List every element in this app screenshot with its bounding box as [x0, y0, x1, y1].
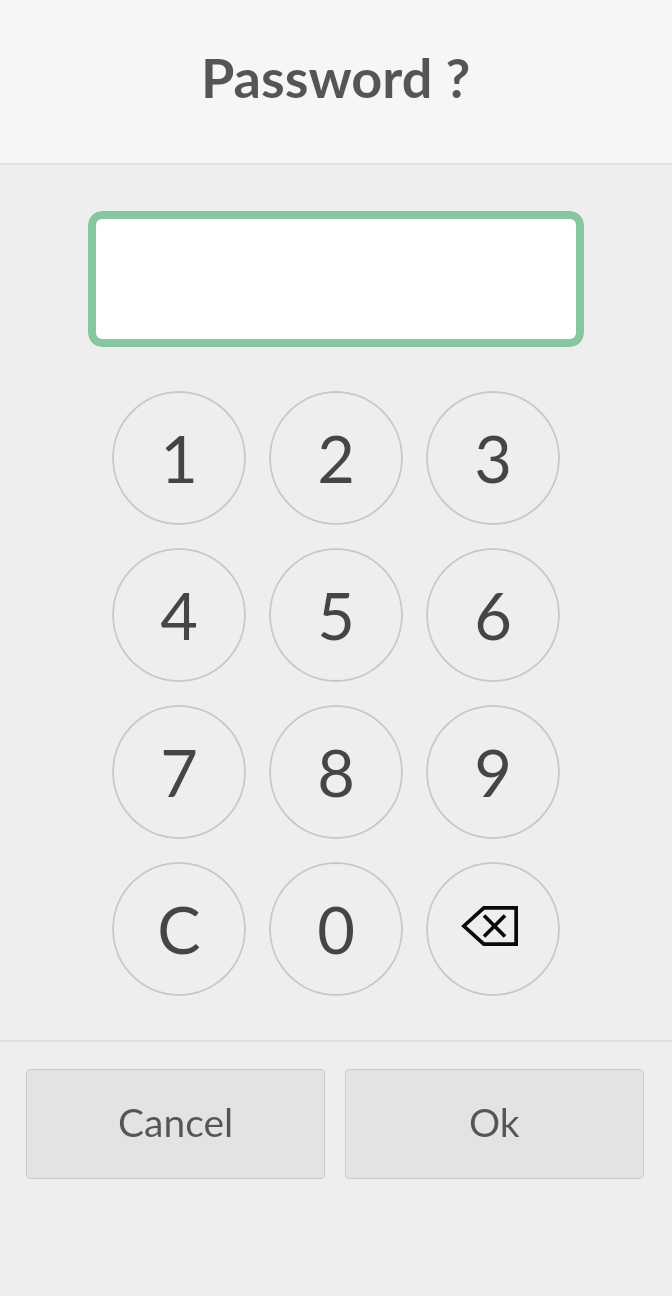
button[interactable]: 5 — [269, 548, 403, 682]
button[interactable]: 0 — [269, 862, 403, 996]
staticText: Password ? — [201, 45, 471, 110]
staticText: C — [157, 890, 201, 968]
button[interactable]: Ok — [345, 1069, 644, 1179]
button[interactable]: 8 — [269, 705, 403, 839]
button[interactable]: Cancel — [26, 1069, 325, 1179]
staticText: 4 — [160, 576, 198, 654]
button[interactable]: C — [112, 862, 246, 996]
button[interactable]: 9 — [426, 705, 560, 839]
button[interactable]: 4 — [112, 548, 246, 682]
staticText: Cancel — [118, 1099, 234, 1146]
staticText: 3 — [474, 419, 512, 497]
button[interactable]: 3 — [426, 391, 560, 525]
staticText: 7 — [160, 733, 198, 811]
button[interactable]: Backspace — [426, 862, 560, 996]
staticText: 9 — [474, 733, 512, 811]
button[interactable]: 1 — [112, 391, 246, 525]
button[interactable]: 6 — [426, 548, 560, 682]
staticText: 1 — [160, 419, 198, 497]
staticText: Ok — [469, 1099, 520, 1146]
staticText: 5 — [317, 576, 355, 654]
staticText: 0 — [317, 890, 355, 968]
staticText: 8 — [317, 733, 355, 811]
staticText: 6 — [474, 576, 512, 654]
button[interactable]: 7 — [112, 705, 246, 839]
button[interactable]: Password field — [88, 211, 584, 347]
staticText: 2 — [317, 419, 355, 497]
button[interactable]: 2 — [269, 391, 403, 525]
